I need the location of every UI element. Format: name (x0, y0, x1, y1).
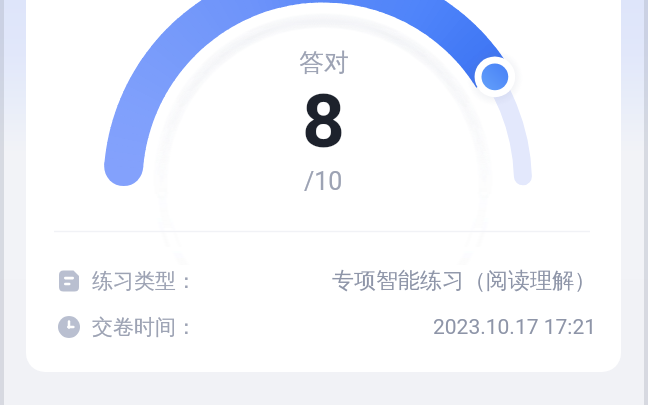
staticText: /10 (304, 167, 343, 196)
staticText: 8 (302, 77, 346, 165)
button[interactable]: 交卷时间： (58, 314, 596, 340)
staticText: 答对 (299, 47, 349, 78)
staticText: 2023.10.17 17:21 (433, 315, 596, 340)
staticText: 练习类型： (92, 268, 197, 294)
staticText: 交卷时间： (92, 314, 197, 340)
staticText: 专项智能练习（阅读理解） (332, 267, 596, 295)
button[interactable]: 练习类型： (58, 267, 596, 295)
